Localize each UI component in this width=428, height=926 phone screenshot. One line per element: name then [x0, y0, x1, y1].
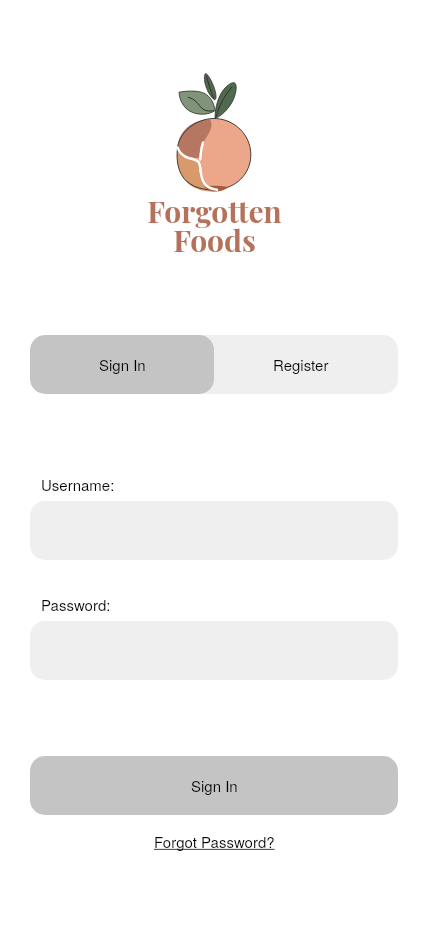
button[interactable]: Sign In — [30, 756, 398, 815]
staticText: Password: — [41, 594, 111, 615]
other: Forgotten Foods logo — [154, 72, 274, 194]
staticText: Forgotten — [147, 191, 282, 231]
staticText: Username: — [41, 474, 115, 495]
staticText: Sign In — [99, 354, 146, 375]
button[interactable]: Register — [214, 335, 398, 394]
staticText: Sign In — [191, 775, 238, 796]
button[interactable]: Forgot Password? — [149, 827, 280, 856]
button[interactable]: Sign In — [30, 335, 214, 394]
staticText: Forgot Password? — [154, 831, 275, 852]
staticText: Register — [273, 354, 329, 375]
staticText: Foods — [173, 220, 256, 260]
